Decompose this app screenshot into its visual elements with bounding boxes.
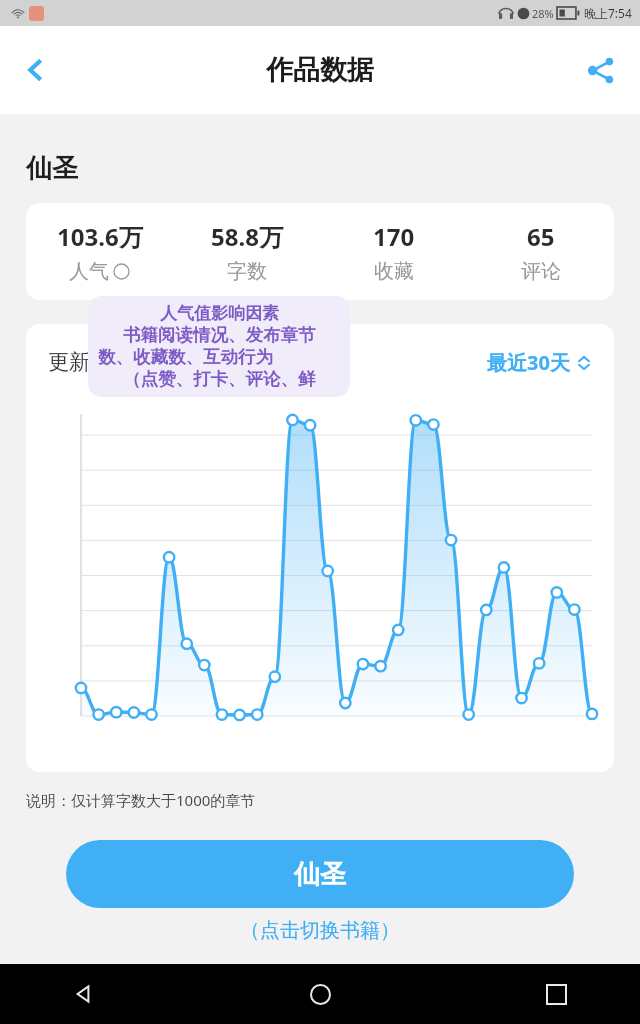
button[interactable]: 103.6万 xyxy=(26,220,173,284)
staticText: 收藏 xyxy=(374,259,414,284)
button[interactable]: 65 xyxy=(467,220,614,284)
staticText: 人气 xyxy=(69,259,109,284)
staticText: 仙圣 xyxy=(294,858,346,891)
button[interactable]: 170 xyxy=(320,220,467,284)
staticText: 晚上7:54 xyxy=(584,5,632,21)
button[interactable]: 58.8万 xyxy=(173,220,320,284)
staticText: 作品数据 xyxy=(266,53,374,87)
staticText: （点击切换书籍） xyxy=(0,918,640,943)
staticText: 28% xyxy=(532,6,554,21)
staticText: 评论 xyxy=(521,259,561,284)
staticText: 仙圣 xyxy=(26,152,78,185)
staticText: 人气值影响因素 xyxy=(160,303,279,324)
button[interactable]: Recents xyxy=(532,970,580,1018)
button[interactable]: Home xyxy=(296,970,344,1018)
button[interactable]: 最近30天 xyxy=(487,349,592,376)
button[interactable]: Back xyxy=(60,970,108,1018)
staticText: 字数 xyxy=(227,259,267,284)
staticText: 说明：仅计算字数大于1000的章节 xyxy=(26,790,256,810)
staticText: 58.8万 xyxy=(211,220,283,253)
staticText: 65 xyxy=(527,220,555,253)
button[interactable]: Back xyxy=(8,42,64,98)
staticText: 103.6万 xyxy=(57,220,143,253)
staticText: 数、收藏数、互动行为 xyxy=(98,346,340,368)
staticText: （点赞、打卡、评论、鲜 xyxy=(123,368,316,390)
staticText: 最近30天 xyxy=(487,349,570,376)
staticText: 书籍阅读情况、发布章节 xyxy=(123,324,316,346)
button[interactable]: 仙圣 xyxy=(66,840,574,908)
staticText: 170 xyxy=(373,220,415,253)
staticText: 更新数据 xyxy=(48,349,132,375)
button[interactable]: Share xyxy=(574,43,628,97)
